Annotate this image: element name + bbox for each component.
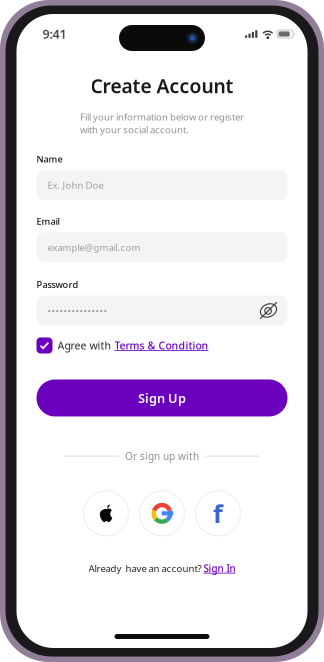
staticText: Email: [36, 215, 59, 227]
staticText: Sign Up: [138, 389, 186, 406]
staticText: Ex. John Doe: [47, 179, 103, 191]
button[interactable]: Sign up with Apple: [83, 491, 128, 536]
button[interactable]: Sign up with Google: [139, 491, 184, 536]
staticText: Password: [36, 278, 78, 290]
staticText: example@gmail.com: [47, 241, 140, 254]
staticText: Terms & Condition: [114, 338, 208, 352]
staticText: Already have an account?: [88, 562, 203, 575]
staticText: f: [213, 496, 223, 530]
button[interactable]: Agree with Terms and Condition: [36, 337, 52, 353]
staticText: •••••••••••••••: [47, 304, 107, 317]
button[interactable]: Terms & Condition: [114, 338, 208, 352]
button[interactable]: Already have an account?: [88, 562, 235, 575]
staticText: Name: [36, 153, 62, 165]
staticText: 9:41: [42, 26, 66, 42]
staticText: Create Account: [90, 73, 233, 98]
button[interactable]: Sign up with Facebook: [195, 491, 240, 536]
button[interactable]: Sign Up: [36, 379, 287, 416]
staticText: Or sign up with: [125, 449, 199, 463]
staticText: Agree with: [57, 338, 114, 352]
staticText: Fill your information below or register …: [80, 110, 244, 136]
staticText: Sign In: [203, 562, 235, 575]
